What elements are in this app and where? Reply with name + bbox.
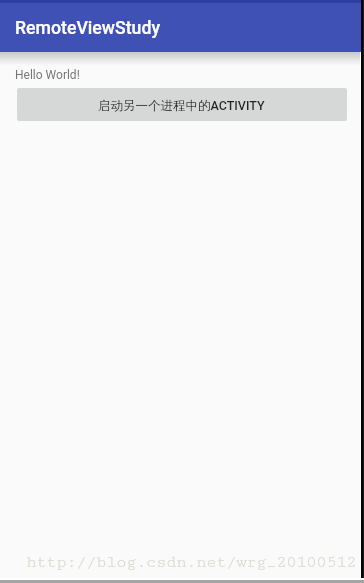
staticText: Hello World!: [15, 68, 80, 82]
button[interactable]: 启动另一个进程中的ACTIVITY: [17, 88, 347, 121]
staticText: RemoteViewStudy: [15, 18, 161, 39]
staticText: 启动另一个进程中的ACTIVITY: [98, 98, 265, 114]
staticText: http://blog.csdn.net/wrg_20100512: [26, 552, 356, 572]
